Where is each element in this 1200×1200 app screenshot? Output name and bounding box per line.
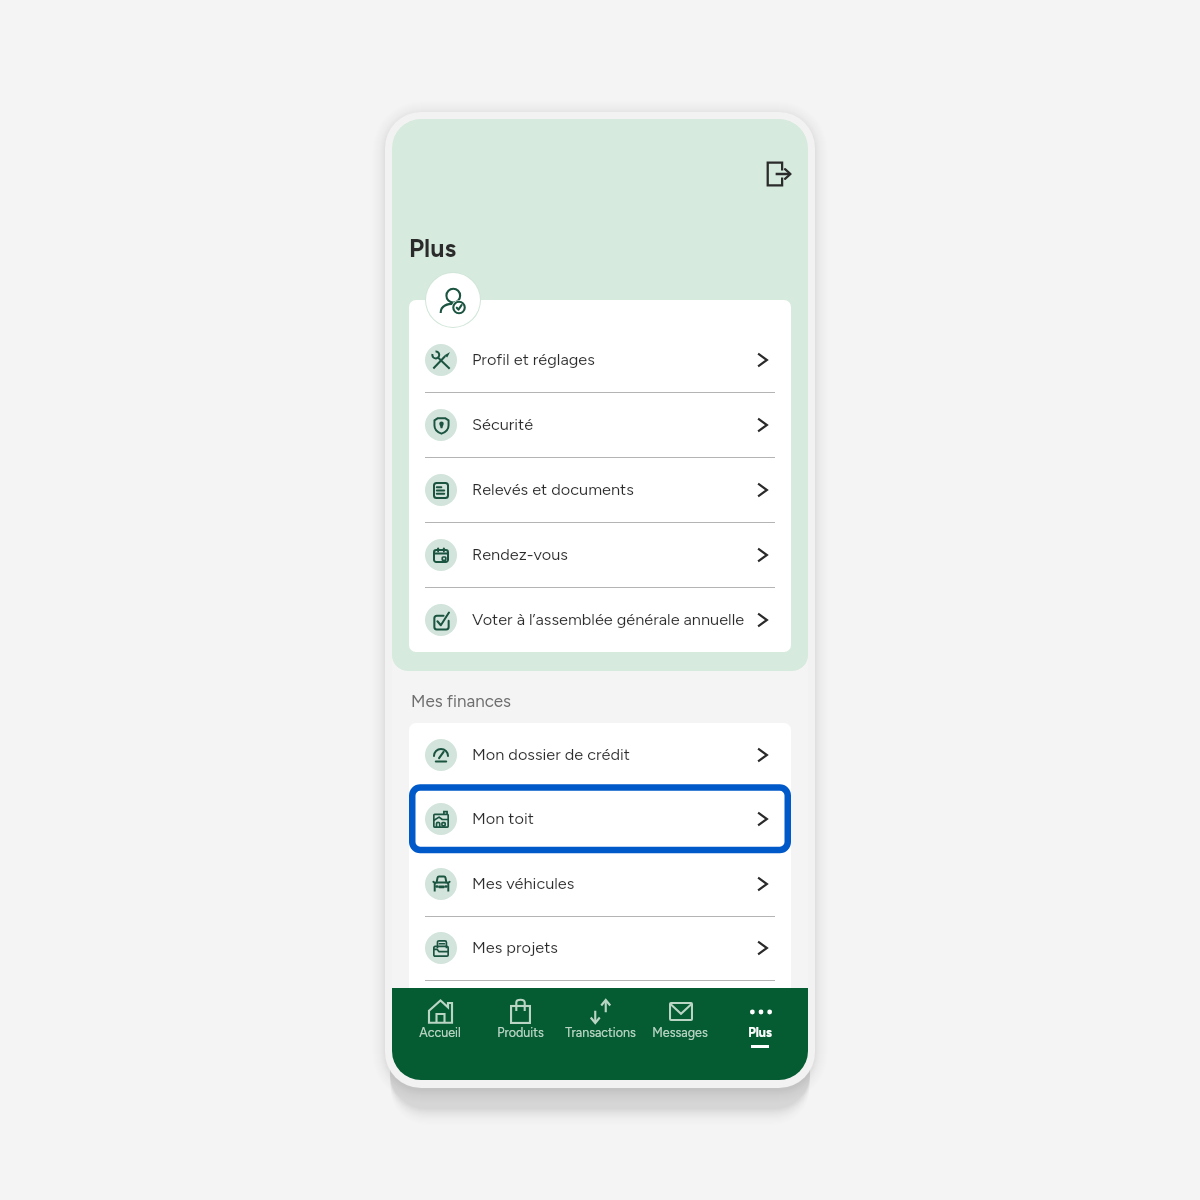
button[interactable]: Profil et réglages [409, 328, 791, 392]
button[interactable]: Mon dossier de crédit [409, 723, 791, 787]
staticText: Mes finances [411, 691, 512, 711]
button[interactable]: Transactions [560, 988, 640, 1080]
staticText: Profil et réglages [472, 350, 757, 370]
button[interactable]: Mes véhicules [409, 852, 791, 916]
staticText: Voter à l’assemblée générale annuelle [472, 610, 757, 630]
staticText: Plus [409, 233, 457, 263]
button[interactable]: Profil [426, 273, 480, 327]
button[interactable]: Rendez-vous [409, 523, 791, 587]
button[interactable] [409, 784, 791, 853]
button[interactable]: Produits [480, 988, 560, 1080]
button[interactable]: Mes projets [409, 916, 791, 980]
staticText: Mon dossier de crédit [472, 745, 757, 765]
button[interactable]: Messages [640, 988, 720, 1080]
staticText: Mes véhicules [472, 874, 757, 894]
staticText: Mon toit [472, 809, 757, 829]
button[interactable]: Relevés et documents [409, 458, 791, 522]
staticText: Accueil [419, 1025, 461, 1040]
staticText: Plus [748, 1025, 772, 1040]
staticText: Relevés et documents [472, 480, 757, 500]
button[interactable]: Voter à l’assemblée générale annuelle [409, 588, 791, 652]
staticText: Rendez-vous [472, 545, 757, 565]
button[interactable]: Plus [720, 988, 800, 1080]
staticText: Transactions [565, 1025, 636, 1040]
button[interactable]: Se déconnecter [761, 156, 797, 192]
button[interactable]: Sécurité [409, 393, 791, 457]
button[interactable]: Mon toit [409, 787, 791, 851]
button[interactable]: Accueil [400, 988, 480, 1080]
staticText: Messages [652, 1025, 708, 1040]
staticText: Produits [497, 1025, 544, 1040]
staticText: Mes projets [472, 938, 757, 958]
staticText: Sécurité [472, 415, 757, 435]
